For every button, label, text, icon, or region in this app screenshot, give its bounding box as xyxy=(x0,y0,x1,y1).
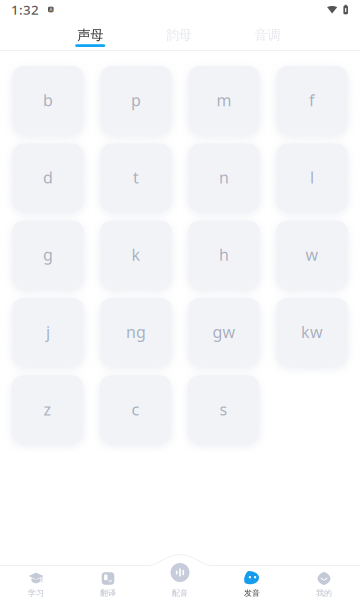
button[interactable]: 我的 xyxy=(288,565,360,600)
button[interactable]: 声母 xyxy=(46,22,134,50)
staticText: 发音 xyxy=(244,588,260,598)
button[interactable]: 翻译 xyxy=(72,565,144,600)
staticText: 翻译 xyxy=(100,588,116,598)
staticText: 配音 xyxy=(172,588,188,598)
staticText: 学习 xyxy=(28,588,44,598)
button[interactable]: t xyxy=(100,143,171,211)
staticText: k xyxy=(131,244,140,265)
button[interactable]: f xyxy=(276,66,347,134)
button[interactable]: d xyxy=(12,143,83,211)
button[interactable]: l xyxy=(276,143,347,211)
button[interactable]: gw xyxy=(188,298,259,366)
staticText: w xyxy=(305,244,318,265)
button[interactable]: g xyxy=(12,221,83,289)
button[interactable]: j xyxy=(12,298,83,366)
staticText: 音调 xyxy=(254,27,280,43)
staticText: n xyxy=(219,167,229,188)
button[interactable]: 学习 xyxy=(0,565,72,600)
button[interactable]: k xyxy=(100,221,171,289)
staticText: c xyxy=(131,399,139,420)
button[interactable]: w xyxy=(276,221,347,289)
button[interactable]: p xyxy=(100,66,171,134)
staticText: z xyxy=(43,399,51,420)
staticText: 1:32 xyxy=(11,1,39,18)
button[interactable]: 音调 xyxy=(223,22,311,50)
staticText: 声母 xyxy=(77,27,103,43)
button[interactable]: kw xyxy=(276,298,347,366)
button[interactable]: b xyxy=(12,66,83,134)
staticText: kw xyxy=(301,321,323,342)
button[interactable]: h xyxy=(188,221,259,289)
button[interactable]: m xyxy=(188,66,259,134)
staticText: s xyxy=(219,399,227,420)
button[interactable]: s xyxy=(188,375,259,443)
staticText: p xyxy=(131,89,141,111)
button[interactable]: z xyxy=(12,375,83,443)
button[interactable]: 配音 xyxy=(144,565,216,600)
staticText: j xyxy=(46,321,50,342)
button[interactable]: 韵母 xyxy=(134,22,223,50)
staticText: A xyxy=(49,6,52,13)
staticText: gw xyxy=(212,321,235,342)
button[interactable]: n xyxy=(188,143,259,211)
button[interactable]: 发音 xyxy=(216,565,288,600)
button[interactable]: ng xyxy=(100,298,171,366)
button[interactable]: c xyxy=(100,375,171,443)
staticText: ng xyxy=(126,321,146,342)
staticText: t xyxy=(133,167,139,188)
staticText: 我的 xyxy=(316,588,332,598)
staticText: 韵母 xyxy=(166,27,192,43)
staticText: b xyxy=(43,89,53,111)
staticText: l xyxy=(310,167,314,188)
staticText: f xyxy=(309,89,315,111)
staticText: m xyxy=(216,89,231,111)
staticText: g xyxy=(43,244,53,265)
staticText: d xyxy=(43,167,53,188)
staticText: h xyxy=(219,244,229,265)
